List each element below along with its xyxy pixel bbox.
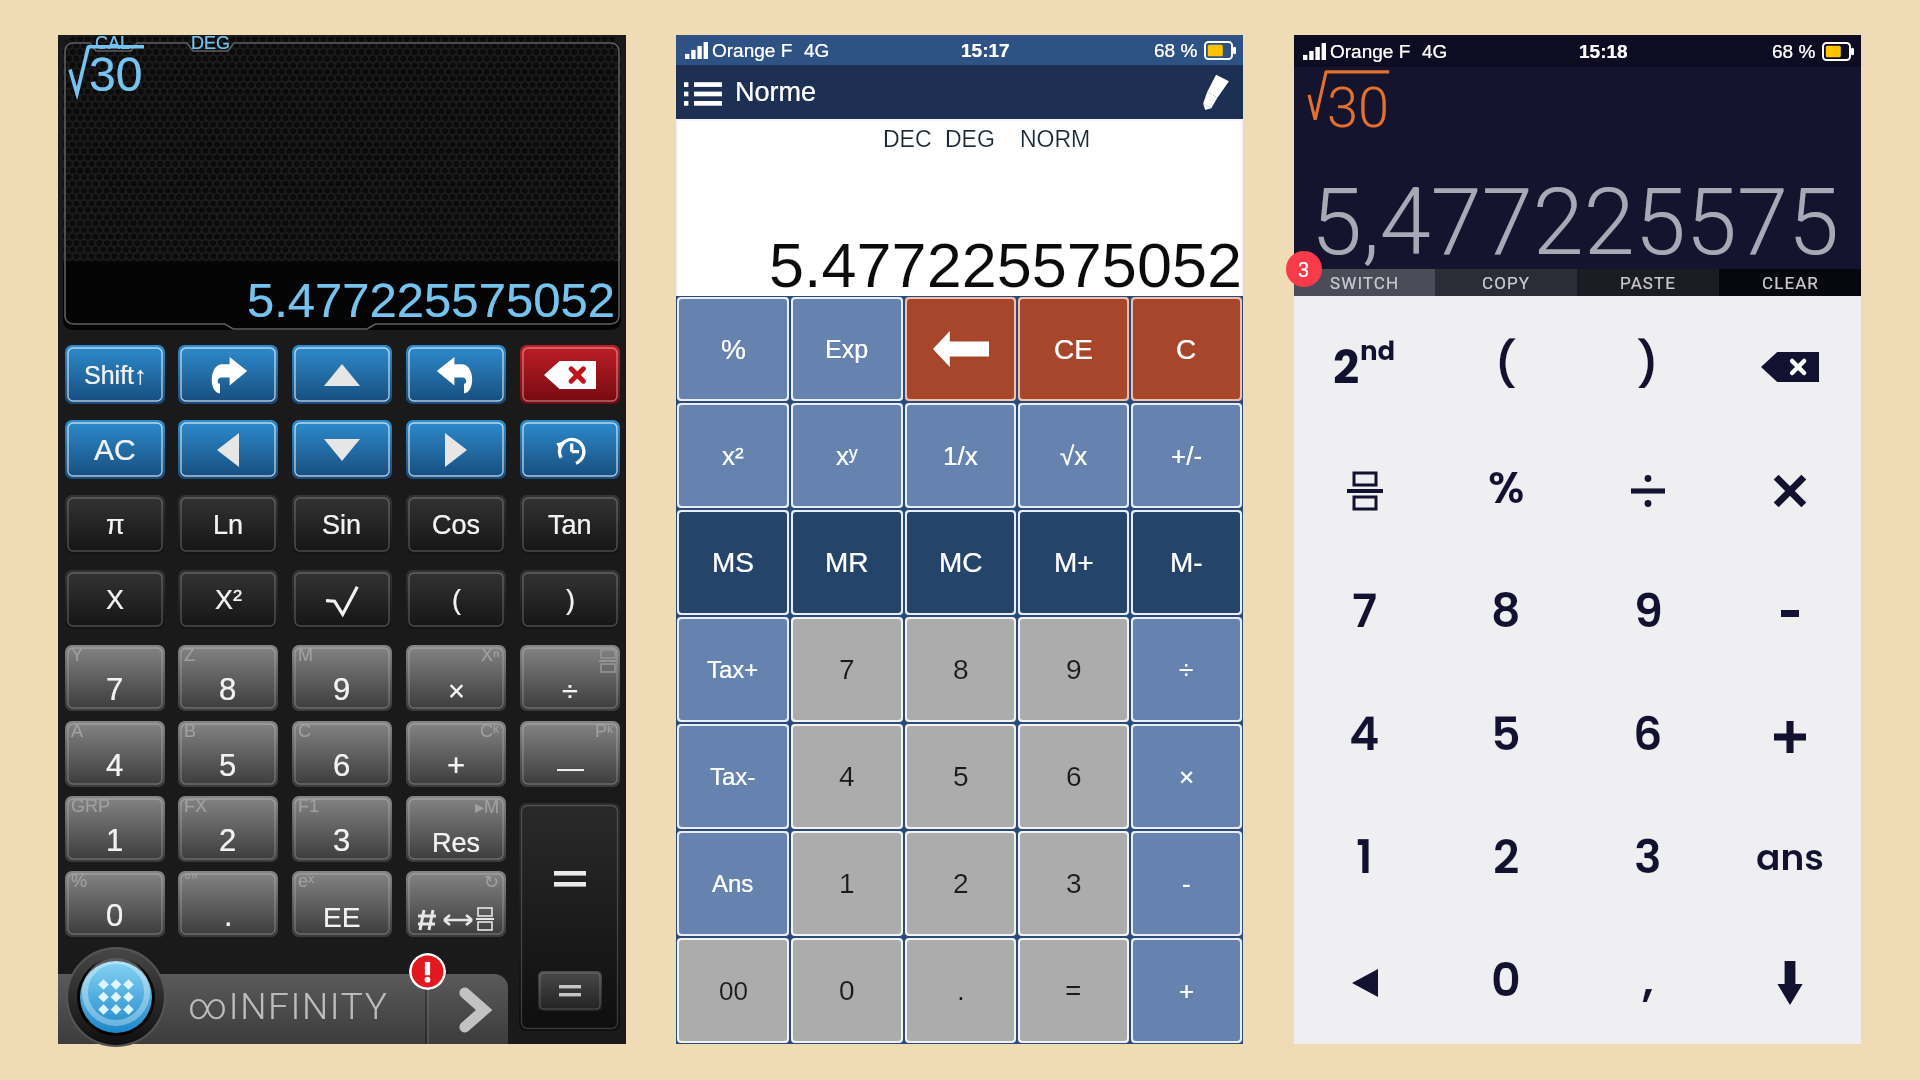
button[interactable]: Left xyxy=(1294,921,1435,1044)
button[interactable]: 2 xyxy=(907,833,1014,934)
button[interactable]: 1 xyxy=(793,833,901,934)
button[interactable]: π xyxy=(65,495,165,554)
button[interactable]: Exp xyxy=(793,299,901,399)
button[interactable]: eˣ xyxy=(292,871,392,937)
button[interactable]: COPY xyxy=(1435,269,1577,296)
button[interactable]: 6 xyxy=(1577,675,1719,798)
button[interactable]: Down xyxy=(1719,921,1861,1044)
button[interactable]: Down xyxy=(292,420,392,479)
button[interactable]: MR xyxy=(793,512,901,613)
button[interactable]: Equals xyxy=(519,803,620,1031)
button[interactable]: A xyxy=(65,721,165,787)
button[interactable] xyxy=(58,974,508,1044)
button[interactable]: Backspace xyxy=(907,299,1014,399)
button[interactable]: xʸ xyxy=(793,405,901,506)
button[interactable]: . xyxy=(907,940,1014,1041)
button[interactable]: x² xyxy=(679,405,787,506)
button[interactable]: ↶ xyxy=(406,345,506,404)
button[interactable]: 2 xyxy=(1294,305,1435,429)
button[interactable]: +/- xyxy=(1133,405,1240,506)
button[interactable]: Ln xyxy=(178,495,278,554)
button[interactable]: = xyxy=(1020,940,1127,1041)
button[interactable]: , xyxy=(1577,921,1719,1044)
button[interactable]: 3 xyxy=(1020,833,1127,934)
button[interactable]: M xyxy=(292,645,392,711)
button[interactable]: Tan xyxy=(520,495,620,554)
button[interactable]: 1/x xyxy=(907,405,1014,506)
button[interactable]: 6 xyxy=(1020,726,1127,827)
button[interactable]: Fraction xyxy=(1294,429,1435,552)
button[interactable]: 7 xyxy=(793,619,901,720)
button[interactable]: SWITCH xyxy=(1294,269,1435,296)
button[interactable]: Square root xyxy=(292,570,392,629)
button[interactable]: PASTE xyxy=(1577,269,1719,296)
button[interactable]: ▸M xyxy=(406,796,506,862)
button[interactable]: 8 xyxy=(1435,552,1577,675)
button[interactable]: % xyxy=(679,299,787,399)
button[interactable]: AC xyxy=(65,420,165,479)
button[interactable]: Divide xyxy=(1577,429,1719,552)
button[interactable]: + xyxy=(1133,940,1240,1041)
button[interactable]: ÷ xyxy=(520,645,620,711)
button[interactable]: B xyxy=(178,721,278,787)
button[interactable]: History xyxy=(520,420,620,479)
button[interactable]: Right xyxy=(406,420,506,479)
button[interactable]: CE xyxy=(1020,299,1127,399)
button[interactable]: M+ xyxy=(1020,512,1127,613)
button[interactable]: Cos xyxy=(406,495,506,554)
button[interactable]: Pᵏ xyxy=(520,721,620,787)
button[interactable]: X² xyxy=(178,570,278,629)
button[interactable]: Shift↑ xyxy=(65,345,165,404)
button[interactable]: Tax- xyxy=(679,726,787,827)
button[interactable]: CLEAR xyxy=(1719,269,1861,296)
button[interactable]: ) xyxy=(520,570,620,629)
button[interactable]: 8 xyxy=(907,619,1014,720)
button[interactable]: 00 xyxy=(679,940,787,1041)
button[interactable]: MS xyxy=(679,512,787,613)
button[interactable]: FX xyxy=(178,796,278,862)
button[interactable]: Xⁿ xyxy=(406,645,506,711)
button[interactable]: Delete xyxy=(520,345,620,404)
button[interactable]: √x xyxy=(1020,405,1127,506)
button[interactable]: Alert xyxy=(409,953,446,990)
button[interactable]: Left xyxy=(178,420,278,479)
button[interactable]: C xyxy=(292,721,392,787)
button[interactable]: 7 xyxy=(1294,552,1435,675)
button[interactable]: Multiply xyxy=(1719,429,1861,552)
button[interactable]: F1 xyxy=(292,796,392,862)
button[interactable]: Up xyxy=(292,345,392,404)
button[interactable]: Z xyxy=(178,645,278,711)
button[interactable]: Equals small xyxy=(538,971,602,1011)
button[interactable]: 4 xyxy=(793,726,901,827)
button[interactable]: × xyxy=(1133,726,1240,827)
button[interactable]: M- xyxy=(1133,512,1240,613)
button[interactable]: Edit xyxy=(1197,74,1231,110)
button[interactable]: % xyxy=(65,871,165,937)
button[interactable]: Tax+ xyxy=(679,619,787,720)
button[interactable]: 2 xyxy=(1435,798,1577,921)
button[interactable]: - xyxy=(1133,833,1240,934)
button[interactable]: % xyxy=(1435,429,1577,552)
button[interactable]: ↷ xyxy=(178,345,278,404)
button[interactable]: °” xyxy=(178,871,278,937)
button[interactable]: Minus xyxy=(1719,552,1861,675)
button[interactable]: 0 xyxy=(793,940,901,1041)
button[interactable]: GRP xyxy=(65,796,165,862)
button[interactable]: Delete xyxy=(1719,305,1861,429)
button[interactable]: Convert xyxy=(406,871,506,937)
button[interactable]: ( xyxy=(406,570,506,629)
button[interactable]: Ans xyxy=(679,833,787,934)
button[interactable]: Cᵏ xyxy=(406,721,506,787)
button[interactable]: 9 xyxy=(1577,552,1719,675)
button[interactable]: X xyxy=(65,570,165,629)
button[interactable]: Menu xyxy=(684,79,723,105)
button[interactable]: MC xyxy=(907,512,1014,613)
button[interactable]: 9 xyxy=(1020,619,1127,720)
button[interactable]: Y xyxy=(65,645,165,711)
button[interactable]: Sin xyxy=(292,495,392,554)
button[interactable]: 5 xyxy=(1435,675,1577,798)
button[interactable]: Plus xyxy=(1719,675,1861,798)
button[interactable]: ) xyxy=(1577,305,1719,429)
button[interactable]: ans xyxy=(1719,798,1861,921)
button[interactable]: 5 xyxy=(907,726,1014,827)
